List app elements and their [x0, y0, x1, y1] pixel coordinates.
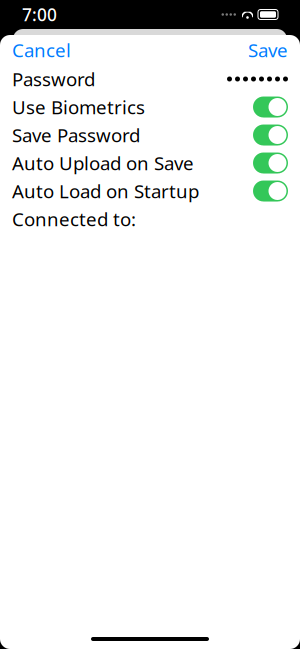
- button[interactable]: Use Biometrics: [0, 93, 300, 121]
- button[interactable]: Save Password: [0, 121, 300, 149]
- button[interactable]: Cancel: [12, 38, 71, 62]
- button[interactable]: Auto Upload on Save: [0, 149, 300, 177]
- staticText: Cancel: [12, 38, 71, 62]
- staticText: Use Biometrics: [12, 95, 145, 119]
- staticText: 7:00: [22, 3, 57, 26]
- staticText: Save: [248, 38, 288, 62]
- button[interactable]: Auto Load on Startup: [0, 177, 300, 205]
- staticText: Auto Upload on Save: [12, 151, 194, 175]
- staticText: Connected to:: [12, 207, 136, 231]
- staticText: Password: [12, 67, 95, 91]
- staticText: Auto Load on Startup: [12, 179, 199, 203]
- button[interactable]: Save: [248, 38, 288, 62]
- staticText: Save Password: [12, 123, 140, 147]
